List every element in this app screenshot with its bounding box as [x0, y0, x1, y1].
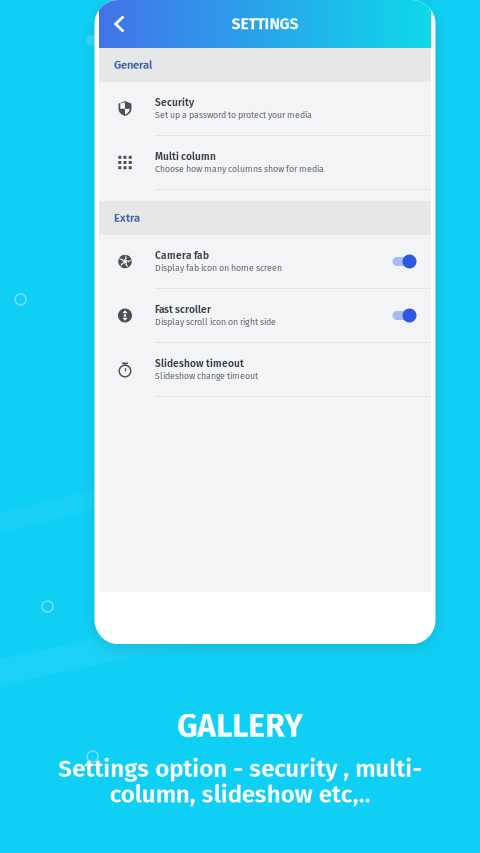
staticText: Multi column: [155, 151, 216, 163]
staticText: Camera fab: [155, 250, 209, 262]
staticText: Slideshow change timeout: [155, 371, 258, 381]
staticText: Slideshow timeout: [155, 358, 244, 370]
staticText: GALLERY: [177, 707, 303, 745]
button[interactable]: Back: [99, 0, 139, 48]
staticText: Display fab icon on home screen: [155, 263, 282, 273]
button[interactable]: Camera fab: [99, 235, 431, 288]
staticText: General: [114, 58, 152, 72]
button[interactable]: Slideshow timeout: [99, 343, 431, 396]
staticText: Extra: [114, 211, 140, 225]
staticText: Fast scroller: [155, 304, 211, 316]
staticText: column, slideshow etc,..: [109, 780, 370, 809]
staticText: Choose how many columns show for media: [155, 164, 324, 174]
staticText: Security: [155, 97, 194, 109]
button[interactable]: Multi column: [99, 136, 431, 189]
staticText: Settings option - security , multi-: [58, 754, 422, 783]
staticText: Set up a password to protect your media: [155, 110, 312, 120]
button[interactable]: Fast scroller: [99, 289, 431, 342]
staticText: SETTINGS: [231, 15, 298, 33]
button[interactable]: Security: [99, 82, 431, 135]
staticText: Display scroll icon on right side: [155, 317, 276, 327]
